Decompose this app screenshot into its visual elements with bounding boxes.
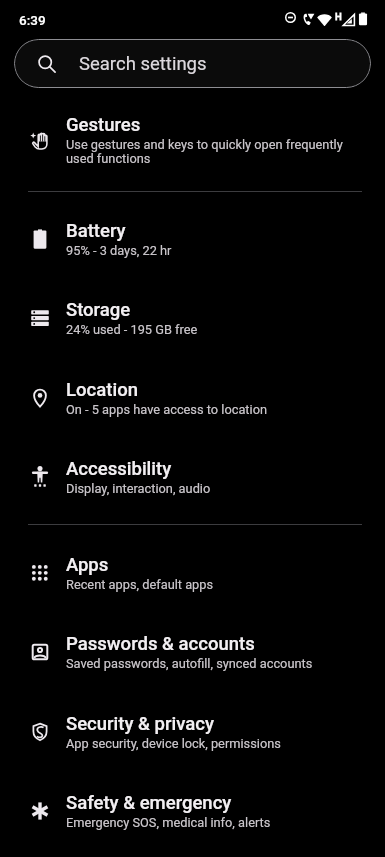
button[interactable]: Storage (0, 287, 385, 335)
other: Location (28, 386, 52, 410)
staticText: H (335, 11, 342, 22)
staticText: Search settings (79, 53, 207, 75)
button[interactable]: Apps (0, 542, 385, 590)
staticText: On - 5 apps have access to location (66, 403, 268, 417)
staticText: Apps (66, 556, 109, 575)
staticText: Storage (66, 301, 131, 320)
staticText: Accessibility (66, 460, 172, 479)
other: Accessibility (28, 465, 52, 489)
button[interactable]: Security and privacy (0, 701, 385, 749)
button[interactable]: Search (14, 39, 371, 88)
staticText: Safety & emergency (66, 794, 232, 813)
button[interactable]: Safety and emergency (0, 780, 385, 828)
staticText: 95% - 3 days, 22 hr (66, 244, 172, 258)
button[interactable]: Accessibility (0, 446, 385, 494)
other: Passwords and accounts (28, 640, 52, 664)
other: Security and privacy (28, 720, 52, 744)
other: Safety and emergency (28, 799, 52, 823)
staticText: 24% used - 195 GB free (66, 323, 198, 337)
button[interactable]: Battery (0, 208, 385, 256)
staticText: Recent apps, default apps (66, 578, 214, 592)
staticText: Location (66, 381, 138, 400)
staticText: Gestures (66, 116, 141, 135)
other: Apps (28, 561, 52, 585)
staticText: Saved passwords, autofill, synced accoun… (66, 657, 313, 671)
staticText: Emergency SOS, medical info, alerts (66, 816, 271, 830)
staticText: Use gestures and keys to quickly open fr… (66, 138, 354, 166)
staticText: Display, interaction, audio (66, 482, 211, 496)
other: Storage (28, 306, 52, 330)
staticText: Battery (66, 222, 126, 241)
staticText: Security & privacy (66, 715, 214, 734)
staticText: 6:39 (19, 12, 46, 28)
other: Battery (28, 227, 52, 251)
other: Search (38, 55, 56, 73)
other: Gestures (28, 128, 52, 152)
staticText: Passwords & accounts (66, 635, 255, 654)
button[interactable]: Gestures (0, 102, 385, 166)
staticText: App security, device lock, permissions (66, 737, 281, 751)
button[interactable]: Location (0, 367, 385, 415)
button[interactable]: Passwords and accounts (0, 621, 385, 669)
